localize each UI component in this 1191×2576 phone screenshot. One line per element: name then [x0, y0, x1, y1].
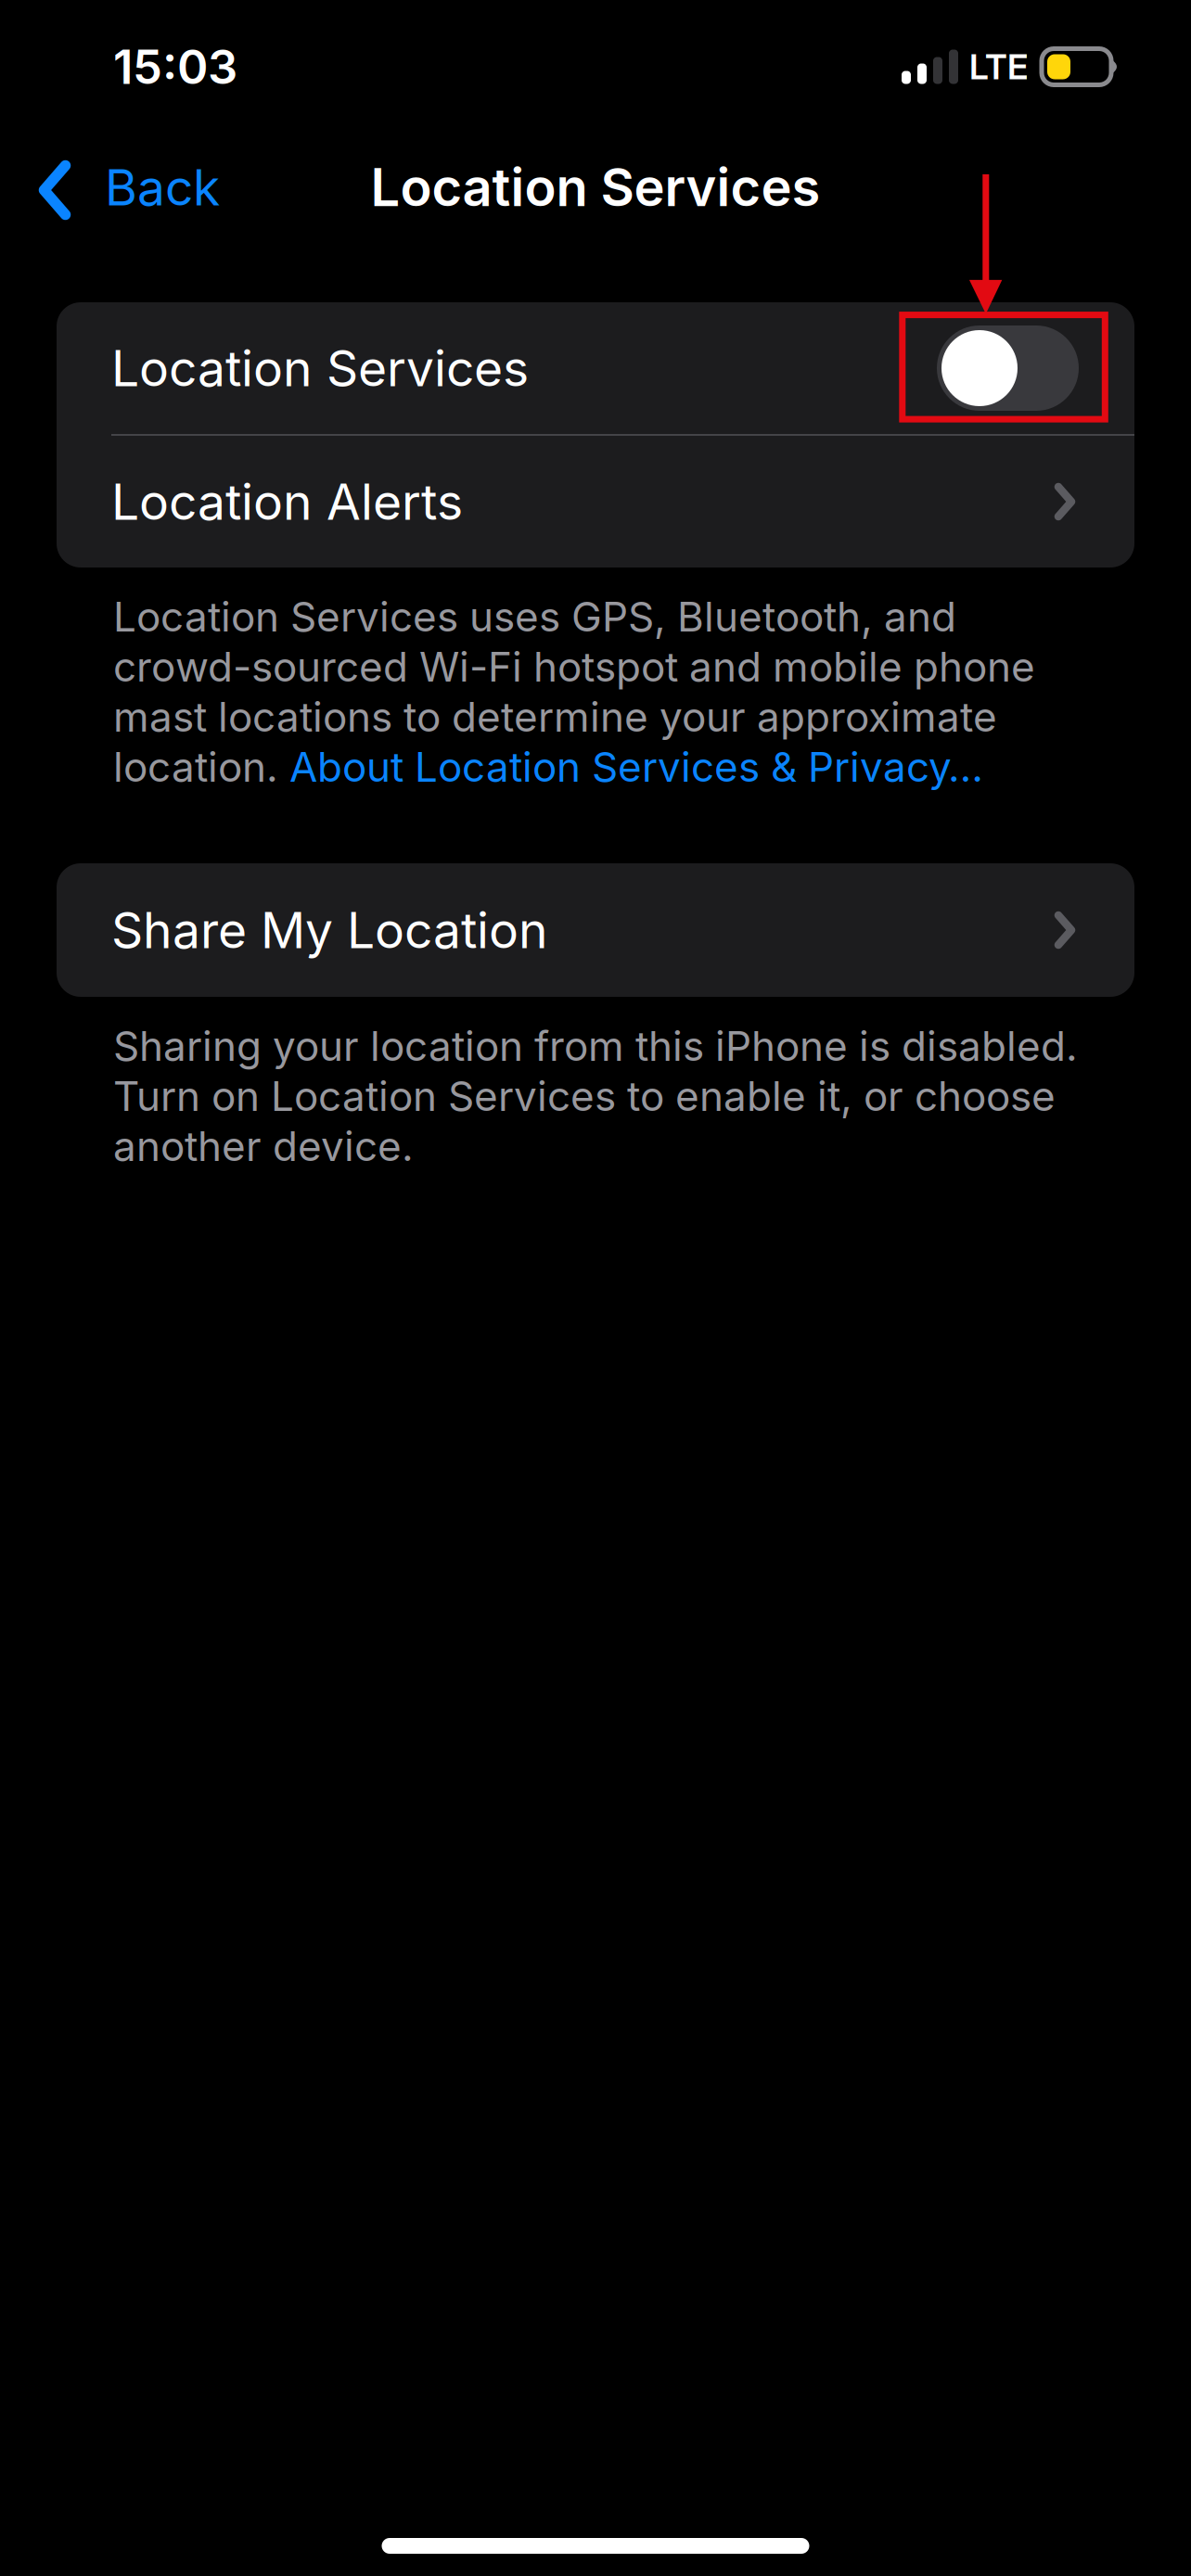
- staticText: Back: [105, 157, 220, 217]
- staticText: another device.: [113, 1121, 414, 1171]
- staticText: Location Services: [371, 156, 820, 219]
- staticText: Location Services uses GPS, Bluetooth, a…: [113, 592, 956, 641]
- staticText: Location Alerts: [111, 472, 463, 532]
- staticText: Turn on Location Services to enable it, …: [113, 1071, 1056, 1121]
- staticText: location.: [113, 742, 289, 792]
- button[interactable]: Share My Location: [57, 863, 1134, 997]
- staticText: crowd-sourced Wi-Fi hotspot and mobile p…: [113, 642, 1035, 691]
- button[interactable]: Location Services: [57, 302, 1134, 434]
- button[interactable]: About Location Services & Privacy…: [289, 742, 983, 792]
- staticText: Share My Location: [111, 900, 548, 960]
- button[interactable]: Back: [0, 135, 248, 239]
- staticText: About Location Services & Privacy…: [289, 742, 983, 792]
- staticText: Sharing your location from this iPhone i…: [113, 1021, 1078, 1071]
- staticText: Location Services: [111, 338, 529, 398]
- staticText: 15:03: [113, 38, 237, 95]
- staticText: LTE: [969, 46, 1028, 88]
- button[interactable]: Location Alerts: [57, 436, 1134, 567]
- staticText: mast locations to determine your approxi…: [113, 692, 997, 741]
